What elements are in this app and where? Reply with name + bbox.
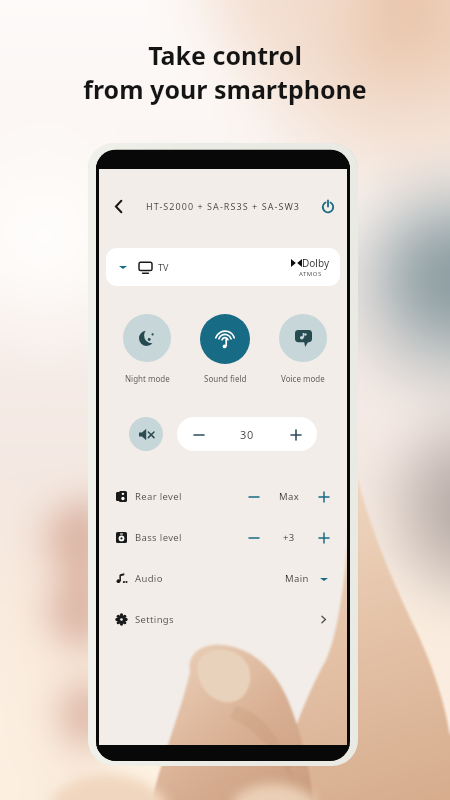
- button[interactable]: Bass level: [99, 517, 347, 558]
- button[interactable]: Voice mode: [279, 314, 327, 384]
- staticText: Take control: [148, 38, 302, 72]
- staticText: Night mode: [125, 373, 170, 384]
- staticText: Voice mode: [281, 373, 325, 384]
- button[interactable]: Decrease Rear level: [246, 489, 262, 505]
- button[interactable]: Volume up: [287, 426, 304, 443]
- staticText: +3: [283, 531, 295, 544]
- staticText: Settings: [135, 613, 174, 626]
- staticText: HT-S2000 + SA-RS3S + SA-SW3: [146, 200, 301, 212]
- staticText: ATMOS: [299, 270, 322, 278]
- button[interactable]: Decrease Bass level: [246, 530, 262, 546]
- staticText: Max: [279, 490, 300, 503]
- button[interactable]: Rear level: [99, 476, 347, 517]
- button[interactable]: Increase Rear level: [316, 489, 332, 505]
- button[interactable]: Audio: [99, 558, 347, 599]
- button[interactable]: Night mode: [123, 314, 171, 384]
- staticText: 30: [240, 427, 254, 442]
- button[interactable]: Power: [316, 194, 340, 218]
- staticText: Audio: [135, 572, 163, 585]
- staticText: Main: [285, 572, 309, 585]
- staticText: from your smartphone: [83, 72, 367, 106]
- staticText: Bass level: [135, 531, 182, 544]
- button[interactable]: Increase Bass level: [316, 530, 332, 546]
- staticText: TV: [158, 261, 169, 273]
- button[interactable]: TV: [106, 248, 340, 286]
- staticText: Sound field: [204, 373, 247, 384]
- staticText: Rear level: [135, 490, 182, 503]
- button[interactable]: Volume down: [190, 426, 207, 443]
- button[interactable]: Mute: [129, 417, 163, 451]
- staticText: Dolby: [302, 256, 329, 270]
- button[interactable]: Settings: [99, 599, 347, 640]
- button[interactable]: Back: [106, 194, 130, 218]
- button[interactable]: Sound field: [200, 314, 250, 384]
